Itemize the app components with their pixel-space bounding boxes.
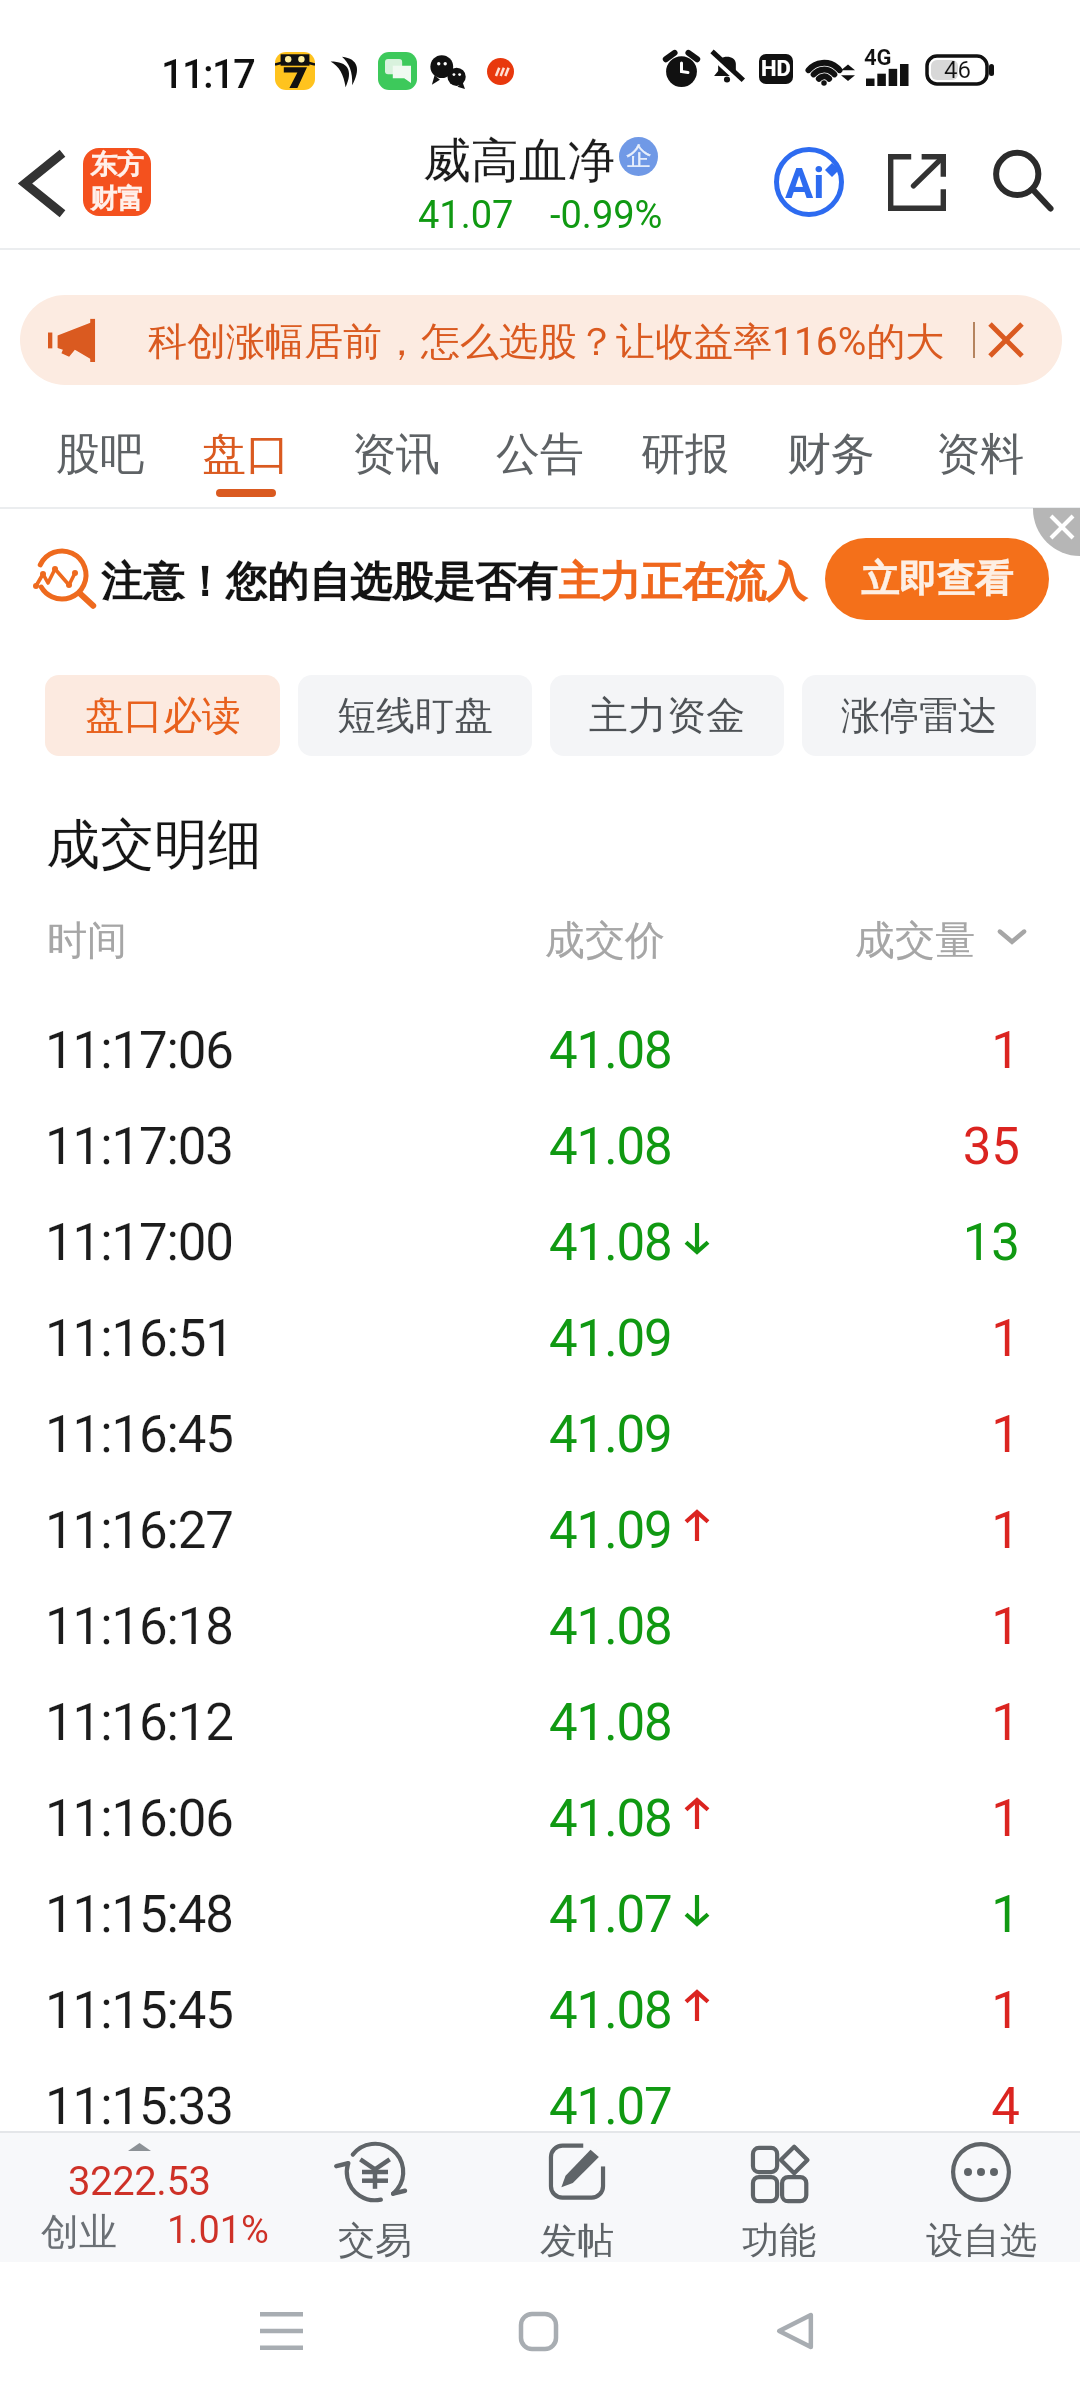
staticText: 威高血净 (423, 131, 615, 191)
button[interactable]: 交易 (275, 2131, 475, 2262)
staticText: 41.07 (549, 2077, 672, 2137)
button[interactable]: 立即查看 (825, 538, 1049, 620)
staticText: 13 (962, 1213, 1020, 1273)
staticText: 主力资金 (589, 691, 745, 740)
staticText: 股吧 (56, 427, 144, 482)
button[interactable]: 盘口 (184, 403, 308, 507)
staticText: 41.09 (549, 1309, 672, 1369)
staticText: 1.01% (167, 2208, 269, 2253)
staticText: 1 (991, 1405, 1020, 1465)
button[interactable]: 研报 (623, 403, 747, 507)
staticText: 公告 (496, 427, 584, 482)
staticText: 功能 (742, 2217, 816, 2264)
staticText: 41.08 (549, 1981, 672, 2041)
button[interactable]: 3222.53 (0, 2131, 274, 2262)
button[interactable]: 11:15:48 (0, 1864, 1080, 1960)
button[interactable] (0, 509, 1080, 665)
button[interactable]: 11:16:06 (0, 1768, 1080, 1864)
button[interactable]: Share (876, 142, 956, 222)
staticText: 主力正在流入 (558, 556, 807, 608)
staticText: 短线盯盘 (337, 691, 493, 740)
button[interactable]: 11:16:27 (0, 1480, 1080, 1576)
button[interactable]: 主力资金 (550, 675, 784, 756)
button[interactable]: 资讯 (334, 403, 458, 507)
staticText: 41.07 (549, 1885, 672, 1945)
button[interactable]: 11:16:12 (0, 1672, 1080, 1768)
button[interactable]: 11:16:18 (0, 1576, 1080, 1672)
staticText: 创业 (41, 2208, 117, 2256)
staticText: 11:15:48 (45, 1885, 233, 1945)
staticText: 41.08 (549, 1117, 672, 1177)
staticText: 11:17:03 (45, 1117, 233, 1177)
staticText: 财务 (787, 427, 875, 482)
staticText: 4G (864, 45, 892, 71)
staticText: 11:17:06 (45, 1021, 233, 1081)
button[interactable]: Back (0, 120, 86, 246)
button[interactable]: 11:17:03 (0, 1096, 1080, 1192)
staticText: 11:15:33 (45, 2077, 233, 2137)
staticText: 11:15:45 (45, 1981, 233, 2041)
button[interactable]: Search (982, 140, 1064, 222)
staticText: 11:16:27 (45, 1501, 233, 1561)
staticText: 41.08 (549, 1693, 672, 1753)
staticText: 1 (991, 1021, 1020, 1081)
staticText: Ai (785, 159, 825, 208)
staticText: 成交量 (855, 915, 975, 965)
staticText: HD (761, 56, 791, 82)
staticText: 41.07 (418, 193, 514, 238)
button[interactable]: 11:16:51 (0, 1288, 1080, 1384)
button[interactable]: 盘口必读 (45, 675, 280, 756)
button[interactable]: Home (448, 2277, 628, 2385)
button[interactable]: 资料 (918, 403, 1042, 507)
button[interactable]: 发帖 (477, 2131, 677, 2262)
button[interactable]: 11:15:45 (0, 1960, 1080, 2056)
staticText: 41.08 (549, 1021, 672, 1081)
staticText: 立即查看 (861, 555, 1013, 603)
button[interactable]: Back (705, 2277, 885, 2385)
staticText: 设自选 (926, 2217, 1037, 2264)
staticText: 1 (991, 1789, 1020, 1849)
staticText: 11:16:45 (45, 1405, 233, 1465)
button[interactable]: 11:15:33 (0, 2056, 1080, 2152)
button[interactable]: Recent apps (191, 2277, 371, 2385)
staticText: 盘口必读 (85, 691, 241, 740)
button[interactable]: 11:16:45 (0, 1384, 1080, 1480)
button[interactable]: Dismiss (980, 314, 1032, 366)
button[interactable]: 股吧 (38, 403, 162, 507)
staticText: 3222.53 (68, 2158, 211, 2205)
button[interactable]: 财务 (769, 403, 893, 507)
button[interactable]: 涨停雷达 (802, 675, 1036, 756)
staticText: 交易 (338, 2217, 412, 2264)
staticText: 时间 (47, 915, 127, 965)
staticText: 资料 (936, 427, 1024, 482)
button[interactable]: 设自选 (881, 2131, 1080, 2262)
button[interactable]: 东方 (83, 148, 151, 216)
staticText: 科创涨幅居前，怎么选股？让收益率116%的大 (148, 317, 945, 366)
staticText: 41.08 (549, 1597, 672, 1657)
staticText: 11:16:18 (45, 1597, 233, 1657)
staticText: 东方 (90, 148, 144, 182)
button[interactable]: 公告 (478, 403, 602, 507)
staticText: 研报 (641, 427, 729, 482)
button[interactable]: 科创涨幅居前，怎么选股？让收益率116%的大 (20, 295, 1062, 385)
button[interactable]: 11:17:00 (0, 1192, 1080, 1288)
staticText: 资讯 (352, 427, 440, 482)
staticText: 财富 (90, 182, 144, 216)
staticText: 1 (991, 1597, 1020, 1657)
staticText: 成交明细 (46, 811, 262, 879)
button[interactable]: 功能 (679, 2131, 879, 2262)
button[interactable]: 11:17:06 (0, 1000, 1080, 1096)
button[interactable]: Close advertisement (1033, 508, 1080, 556)
staticText: 1 (991, 1885, 1020, 1945)
button[interactable]: AI assistant (769, 142, 849, 222)
staticText: 41.09 (549, 1405, 672, 1465)
staticText: 11:16:12 (45, 1693, 233, 1753)
staticText: 发帖 (540, 2217, 614, 2264)
button[interactable]: 短线盯盘 (298, 675, 532, 756)
staticText: 1 (991, 1501, 1020, 1561)
staticText: 注意！您的自选股是否有 (101, 556, 558, 608)
staticText: 1 (991, 1981, 1020, 2041)
staticText: -0.99% (550, 193, 663, 238)
button[interactable]: Sort by volume (984, 908, 1040, 964)
staticText: 11:16:06 (45, 1789, 233, 1849)
